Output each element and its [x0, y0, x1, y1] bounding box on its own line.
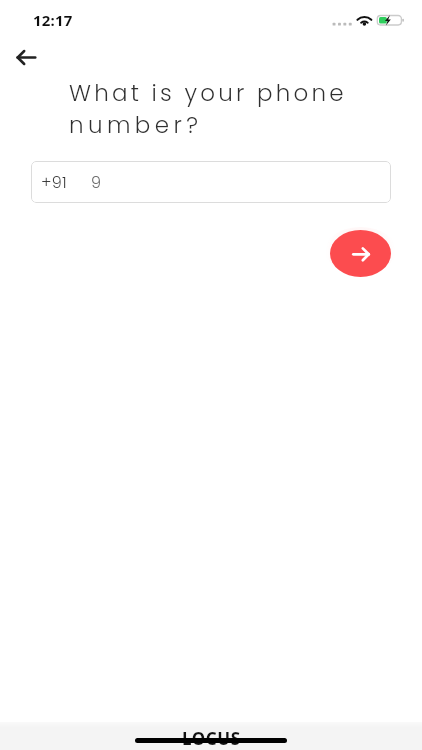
staticText: 12:17 — [33, 10, 73, 30]
staticText: 9 — [91, 171, 102, 193]
button[interactable]: +91 — [31, 161, 391, 203]
staticText: +91 — [41, 171, 68, 193]
button[interactable]: Continue — [330, 230, 391, 277]
staticText: LOCUS — [182, 727, 241, 750]
button[interactable]: Back — [8, 36, 45, 73]
staticText: What is your phone — [69, 77, 347, 109]
staticText: number? — [69, 109, 203, 141]
